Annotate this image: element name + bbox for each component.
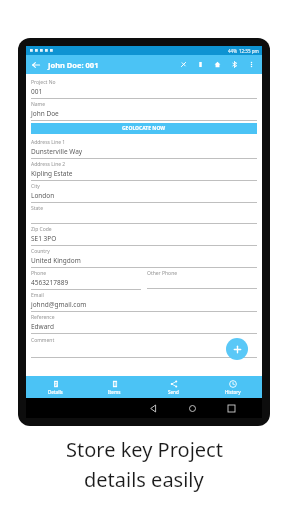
button[interactable]: Zip Code [31, 224, 257, 246]
staticText: Country [31, 248, 50, 255]
staticText: John Doe [31, 109, 59, 118]
staticText: GEOLOCATE NOW [122, 125, 166, 132]
button[interactable]: Back [26, 55, 45, 74]
staticText: 001 [31, 87, 43, 96]
staticText: London [31, 191, 55, 200]
button[interactable]: Other Phone [147, 268, 257, 289]
staticText: History [225, 389, 241, 395]
staticText: 4563217889 [31, 278, 69, 287]
staticText: Phone [31, 270, 47, 277]
button[interactable]: Bluetooth [226, 56, 243, 73]
button[interactable]: Email [31, 290, 257, 312]
staticText: Name [31, 101, 46, 108]
button[interactable]: More options [243, 56, 260, 73]
staticText: Kipling Estate [31, 169, 73, 178]
button[interactable]: Name [31, 99, 257, 121]
staticText: City [31, 183, 40, 190]
staticText: Comment [31, 337, 55, 344]
staticText: Other Phone [147, 270, 178, 277]
staticText: United Kingdom [31, 256, 81, 265]
staticText: Address Line 1 [31, 139, 66, 146]
staticText: Dunsterville Way [31, 147, 83, 156]
button[interactable]: Add [226, 338, 248, 360]
button[interactable]: Address Line 1 [31, 137, 257, 159]
button[interactable]: Address Line 2 [31, 159, 257, 181]
staticText: Send [168, 389, 179, 395]
button[interactable]: Home [185, 401, 199, 415]
staticText: Edward [31, 322, 54, 331]
button[interactable]: Send [144, 376, 203, 398]
staticText: johnd@gmail.com [31, 300, 87, 309]
button[interactable]: Device [192, 56, 209, 73]
staticText: Email [31, 292, 44, 299]
button[interactable]: Home [209, 56, 226, 73]
staticText: SE1 3PO [31, 234, 57, 243]
staticText: 44% [228, 48, 237, 54]
button[interactable]: State [31, 203, 257, 224]
button[interactable]: Back [146, 401, 160, 415]
staticText: Address Line 2 [31, 161, 66, 168]
staticText: Zip Code [31, 226, 52, 233]
staticText: Details [48, 389, 63, 395]
staticText: Project No [31, 79, 56, 86]
button[interactable]: Items [85, 376, 144, 398]
button[interactable]: Country [31, 246, 257, 268]
button[interactable]: City [31, 181, 257, 203]
button[interactable]: Recents [224, 401, 238, 415]
staticText: Items [108, 389, 121, 395]
button[interactable]: GEOLOCATE NOW [31, 123, 257, 134]
staticText: Reference [31, 314, 55, 321]
staticText: State [31, 205, 43, 212]
staticText: Store key Project [66, 436, 223, 463]
staticText: John Doe: 001 [48, 60, 99, 70]
button[interactable]: Project No [31, 77, 257, 99]
staticText: details easily [84, 466, 204, 493]
button[interactable]: Reference [31, 312, 257, 334]
button[interactable]: History [203, 376, 262, 398]
staticText: 12:35 pm [239, 48, 259, 54]
button[interactable]: Details [26, 376, 85, 398]
button[interactable]: Scan [175, 56, 192, 73]
button[interactable]: Phone [31, 268, 141, 290]
